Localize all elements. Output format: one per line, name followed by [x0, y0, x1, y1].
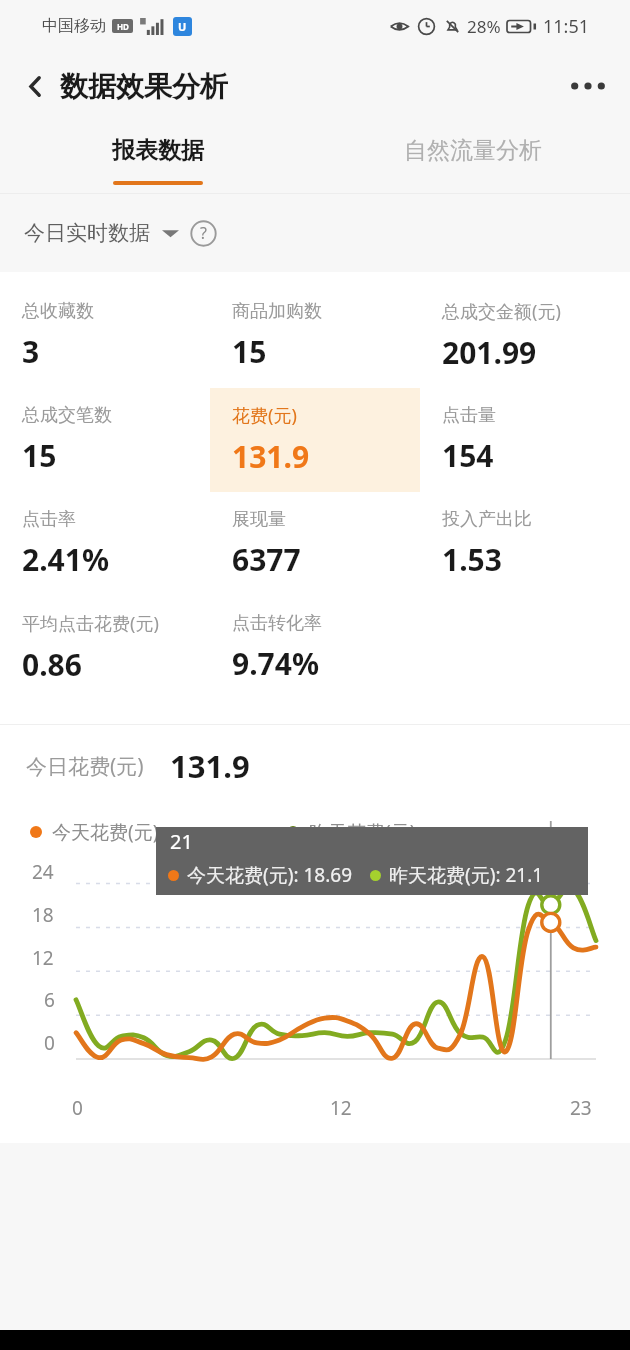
staticText: 点击率	[22, 508, 76, 531]
staticText: 6	[44, 987, 55, 1013]
staticText: 花费(元)	[232, 403, 297, 428]
staticText: 投入产出比	[442, 508, 532, 531]
staticText: 昨天花费(元)	[309, 819, 416, 845]
staticText: 11:51	[543, 14, 590, 39]
staticText: 154	[442, 435, 494, 476]
button[interactable]: 点击转化率	[210, 596, 420, 700]
staticText: 中国移动	[42, 16, 106, 36]
button[interactable]: Help	[182, 212, 224, 254]
button[interactable]: 展现量	[210, 492, 420, 596]
staticText: 28%	[467, 15, 501, 38]
staticText: 展现量	[232, 508, 286, 531]
staticText: 21	[170, 828, 193, 855]
button[interactable]: Back	[12, 63, 58, 109]
button[interactable]: 点击量	[420, 388, 630, 492]
staticText: 2.41%	[22, 539, 109, 580]
staticText: 18	[32, 902, 54, 928]
staticText: 自然流量分析	[404, 136, 542, 165]
button[interactable]: 自然流量分析	[315, 120, 630, 194]
staticText: 数据效果分析	[60, 69, 228, 104]
staticText: 今天花费(元)	[52, 819, 159, 845]
staticText: 9.74%	[232, 643, 319, 684]
staticText: 总收藏数	[22, 300, 94, 323]
staticText: 3	[22, 331, 40, 372]
button[interactable]: 总收藏数	[0, 284, 210, 388]
staticText: 6377	[232, 539, 301, 580]
staticText: ?	[200, 222, 207, 244]
button[interactable]: More options	[560, 58, 616, 114]
button[interactable]: 报表数据	[0, 120, 315, 194]
button[interactable]: 总成交笔数	[0, 388, 210, 492]
staticText: 报表数据	[112, 136, 204, 165]
staticText: 201.99	[442, 332, 537, 373]
staticText: 今日实时数据	[24, 220, 150, 246]
staticText: 点击转化率	[232, 612, 322, 635]
button[interactable]: 花费(元)	[210, 388, 420, 492]
staticText: 12	[32, 945, 54, 971]
staticText: 点击量	[442, 404, 496, 427]
button[interactable]: 总成交金额(元)	[420, 284, 630, 388]
staticText: 0	[72, 1095, 83, 1121]
staticText: 15	[22, 435, 57, 476]
staticText: 总成交金额(元)	[442, 299, 561, 324]
staticText: 今天花费(元): 18.69	[187, 862, 352, 888]
button[interactable]: 投入产出比	[420, 492, 630, 596]
staticText: 24	[32, 859, 54, 885]
staticText: 0	[44, 1030, 55, 1056]
button[interactable]: 点击率	[0, 492, 210, 596]
staticText: 今日花费(元)	[26, 752, 144, 781]
staticText: 总成交笔数	[22, 404, 112, 427]
staticText: 12	[330, 1095, 352, 1121]
staticText: U	[178, 19, 187, 34]
button[interactable]: 商品加购数	[210, 284, 420, 388]
button[interactable]: 今日实时数据	[24, 220, 179, 246]
staticText: 1.53	[442, 539, 502, 580]
button[interactable]: 平均点击花费(元)	[0, 596, 210, 700]
staticText: HD	[117, 21, 129, 32]
staticText: 23	[570, 1095, 592, 1121]
staticText: 131.9	[232, 436, 310, 477]
staticText: 0.86	[22, 644, 82, 685]
staticText: 昨天花费(元): 21.1	[389, 862, 544, 888]
staticText: 商品加购数	[232, 300, 322, 323]
staticText: 131.9	[170, 745, 250, 787]
staticText: 平均点击花费(元)	[22, 611, 159, 636]
staticText: 15	[232, 331, 267, 372]
